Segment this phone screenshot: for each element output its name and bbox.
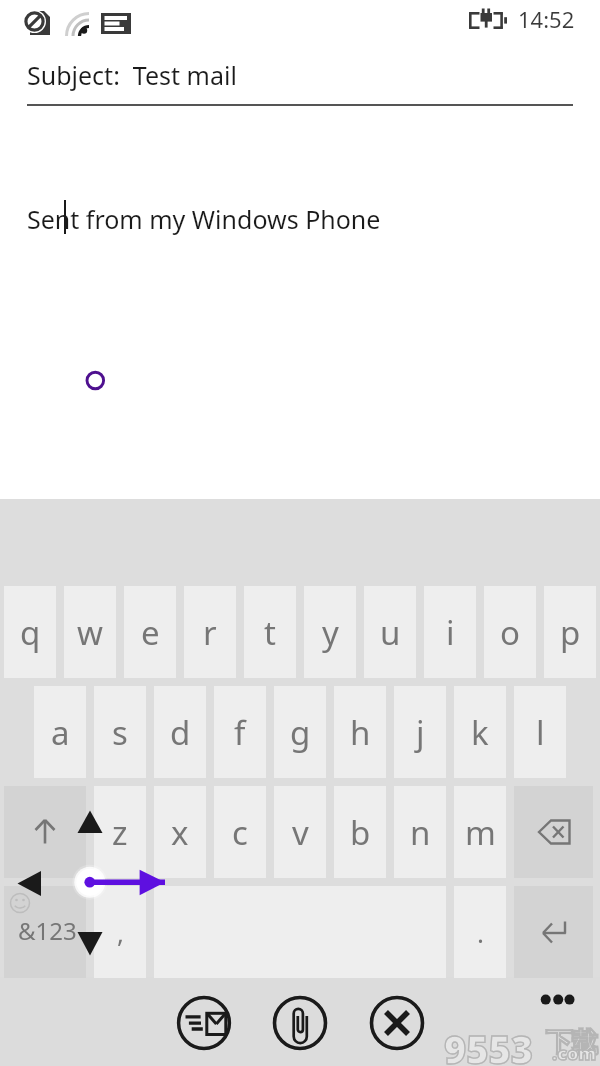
- button[interactable]: r: [184, 586, 236, 678]
- staticText: 下载: [546, 1026, 598, 1059]
- staticText: s: [112, 710, 128, 755]
- staticText: j: [416, 710, 425, 755]
- staticText: v: [292, 810, 309, 855]
- button[interactable]: f: [214, 686, 266, 778]
- staticText: n: [410, 810, 431, 855]
- button[interactable]: l: [514, 686, 566, 778]
- button[interactable]: Attach: [272, 995, 328, 1051]
- button[interactable]: v: [274, 786, 326, 878]
- button[interactable]: x: [154, 786, 206, 878]
- staticText: .: [477, 915, 484, 950]
- button[interactable]: u: [364, 586, 416, 678]
- button[interactable]: k: [454, 686, 506, 778]
- button[interactable]: w: [64, 586, 116, 678]
- staticText: .com: [552, 1041, 597, 1066]
- button[interactable]: z: [94, 786, 146, 878]
- button[interactable]: d: [154, 686, 206, 778]
- button[interactable]: g: [274, 686, 326, 778]
- staticText: w: [77, 610, 103, 655]
- button[interactable]: Enter: [514, 886, 593, 978]
- staticText: 下载: [546, 1026, 598, 1059]
- button[interactable]: y: [304, 586, 356, 678]
- staticText: p: [560, 610, 581, 655]
- staticText: Subject: Test mail: [27, 58, 237, 92]
- button[interactable]: More options: [532, 980, 588, 1020]
- button[interactable]: s: [94, 686, 146, 778]
- button[interactable]: h: [334, 686, 386, 778]
- button[interactable]: j: [394, 686, 446, 778]
- button[interactable]: q: [4, 586, 56, 678]
- staticText: Sent from my Windows Phone: [27, 202, 381, 236]
- staticText: 9553: [444, 1023, 534, 1066]
- staticText: t: [264, 610, 276, 655]
- button[interactable]: Backspace: [514, 786, 593, 878]
- button[interactable]: Close: [369, 995, 425, 1051]
- staticText: k: [471, 710, 489, 755]
- staticText: c: [232, 810, 248, 855]
- staticText: o: [500, 610, 520, 655]
- button[interactable]: e: [124, 586, 176, 678]
- button[interactable]: i: [424, 586, 476, 678]
- button[interactable]: m: [454, 786, 506, 878]
- staticText: ,: [117, 915, 124, 950]
- staticText: r: [203, 610, 217, 655]
- staticText: y: [322, 610, 339, 655]
- button[interactable]: n: [394, 786, 446, 878]
- button[interactable]: .: [454, 886, 506, 978]
- staticText: f: [234, 710, 246, 755]
- staticText: i: [446, 610, 455, 655]
- staticText: u: [380, 610, 401, 655]
- staticText: g: [290, 710, 311, 755]
- staticText: z: [112, 810, 128, 855]
- staticText: 14:52: [518, 4, 575, 34]
- button[interactable]: b: [334, 786, 386, 878]
- staticText: a: [51, 710, 70, 755]
- staticText: d: [170, 710, 191, 755]
- staticText: &123: [18, 914, 77, 947]
- staticText: x: [171, 810, 189, 855]
- button[interactable]: a: [34, 686, 86, 778]
- button[interactable]: c: [214, 786, 266, 878]
- staticText: .com: [552, 1041, 597, 1066]
- staticText: b: [350, 810, 371, 855]
- staticText: q: [20, 610, 41, 655]
- button[interactable]: o: [484, 586, 536, 678]
- button[interactable]: Shift: [4, 786, 86, 878]
- staticText: 9553: [444, 1023, 534, 1066]
- staticText: m: [465, 810, 496, 855]
- button[interactable]: ,: [94, 886, 146, 978]
- button[interactable]: Send: [176, 995, 232, 1051]
- button[interactable]: Symbols: [4, 886, 86, 978]
- staticText: h: [350, 710, 371, 755]
- staticText: e: [141, 610, 160, 655]
- button[interactable]: p: [544, 586, 596, 678]
- staticText: l: [536, 710, 545, 755]
- button[interactable]: t: [244, 586, 296, 678]
